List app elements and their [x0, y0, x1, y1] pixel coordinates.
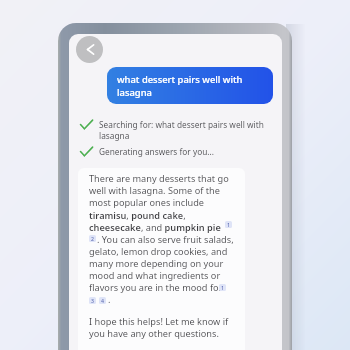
button[interactable]: what dessert pairs well with lasagna — [107, 67, 273, 104]
staticText: 1 — [221, 284, 224, 291]
staticText: you have any other questions. — [89, 327, 219, 340]
staticText: Searching for: what dessert pairs well w… — [99, 119, 264, 141]
button[interactable]: Citation 4 — [99, 297, 106, 304]
button[interactable]: There are many desserts that go — [78, 168, 245, 350]
staticText: most popular ones include — [89, 196, 205, 209]
button[interactable]: Citation 1 — [225, 221, 232, 228]
button[interactable]: Citation 2 — [89, 235, 96, 242]
staticText: 4 — [101, 297, 104, 304]
staticText: many more depending on your — [89, 257, 224, 270]
staticText: well with lasagna. Some of the — [89, 184, 220, 197]
button[interactable]: Citation 1 — [219, 284, 226, 291]
staticText: 2 — [91, 235, 94, 242]
staticText: Generating answers for you... — [99, 146, 214, 157]
staticText: cheesecake, and pumpkin pie — [89, 221, 221, 234]
staticText: gelato, lemon drop cookies, and — [89, 245, 228, 258]
button[interactable]: Citation 3 — [89, 297, 96, 304]
staticText: . — [108, 293, 111, 306]
staticText: There are many desserts that go — [89, 172, 229, 185]
button[interactable]: Back — [76, 36, 103, 63]
staticText: 3 — [91, 297, 94, 304]
staticText: what dessert pairs well with lasagna — [117, 73, 243, 99]
staticText: 1 — [227, 221, 230, 228]
staticText: tiramisu, pound cake, — [89, 209, 186, 222]
staticText: flavors you are in the mood for — [89, 281, 223, 294]
staticText: mood and what ingredients or — [89, 269, 221, 282]
staticText: . You can also serve fruit salads, — [97, 233, 234, 246]
staticText: I hope this helps! Let me know if — [89, 315, 229, 328]
